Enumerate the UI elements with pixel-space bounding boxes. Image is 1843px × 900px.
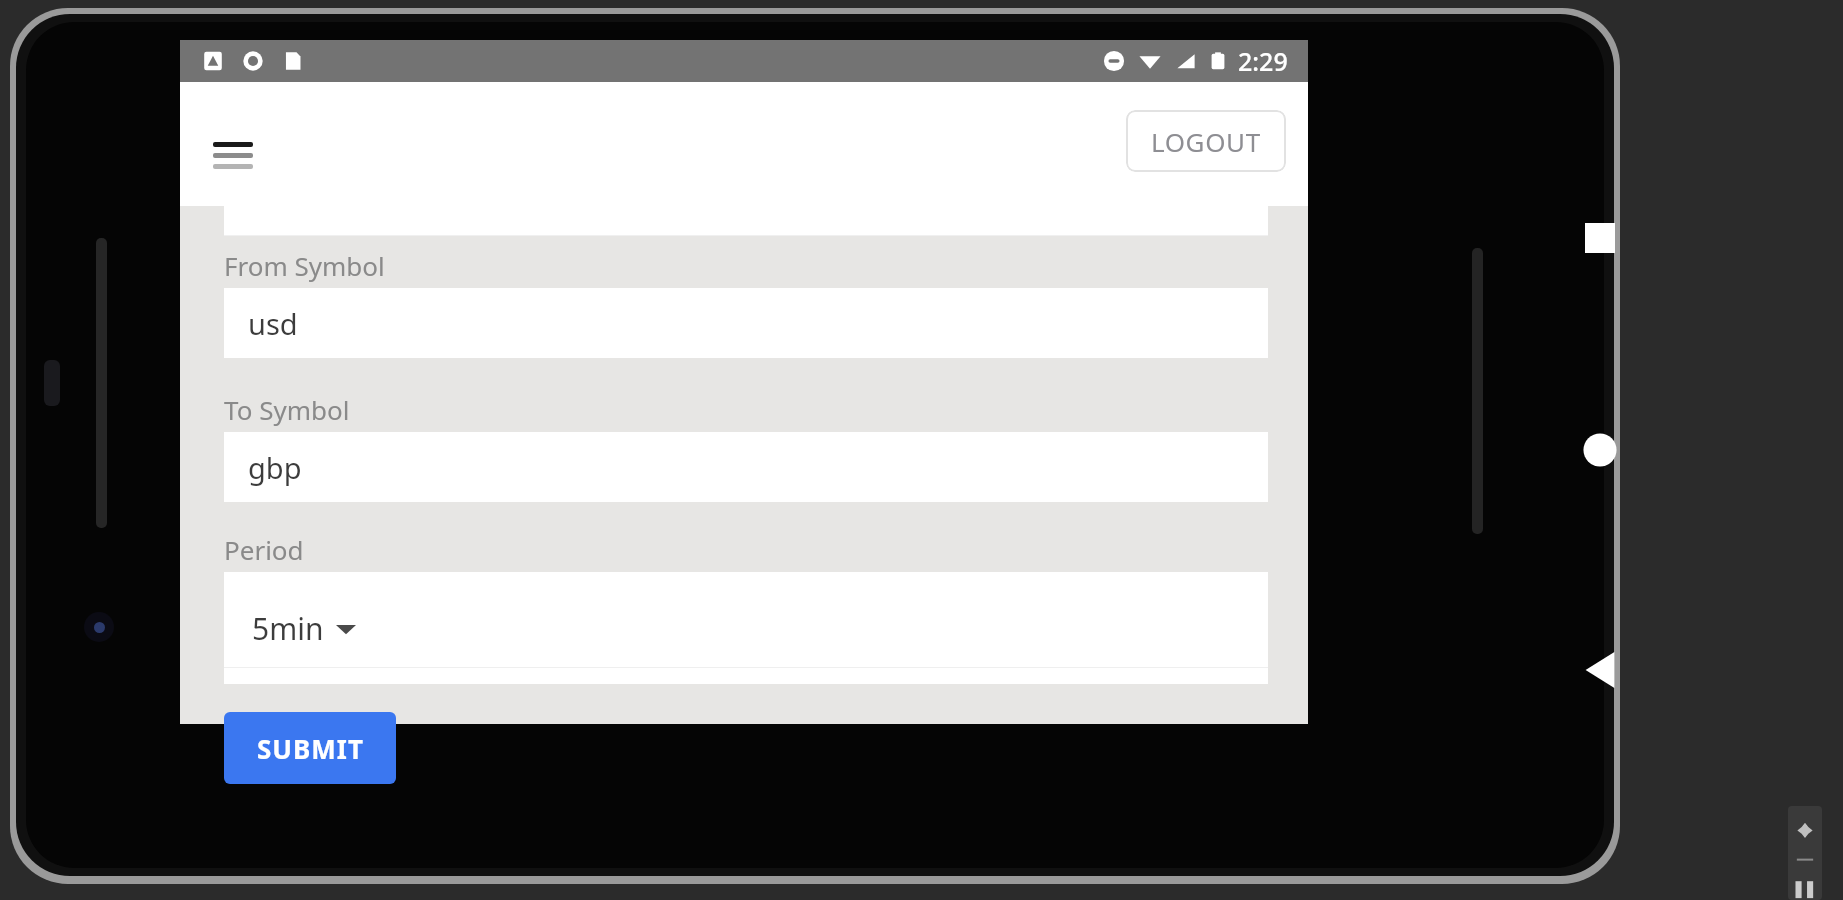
button[interactable]: Home	[1568, 418, 1632, 482]
staticText: SUBMIT	[257, 731, 364, 766]
staticText: LOGOUT	[1151, 124, 1261, 159]
button[interactable]: LOGOUT	[1126, 110, 1286, 172]
button[interactable]: Zoom controls	[1788, 806, 1822, 900]
staticText: Period	[224, 532, 304, 567]
staticText: usd	[248, 304, 298, 343]
button[interactable]: Recent apps	[1568, 206, 1632, 270]
button[interactable]: Back	[1568, 638, 1632, 702]
staticText: 2:29	[1238, 44, 1288, 78]
button[interactable]: usd	[224, 288, 1268, 358]
button[interactable]: SUBMIT	[224, 712, 396, 784]
staticText: 5min	[252, 608, 324, 649]
button[interactable]: gbp	[224, 432, 1268, 502]
staticText: From Symbol	[224, 248, 385, 283]
button[interactable]: Open navigation menu	[204, 127, 262, 185]
staticText: gbp	[248, 448, 302, 487]
staticText: To Symbol	[224, 392, 350, 427]
button[interactable]: 5min	[224, 572, 1268, 684]
